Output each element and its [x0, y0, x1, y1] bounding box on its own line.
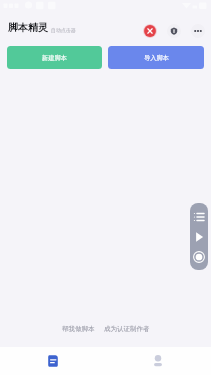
button[interactable]: Play [190, 228, 208, 246]
button[interactable]: Scripts [0, 347, 105, 375]
button[interactable]: 导入脚本 [108, 46, 204, 69]
staticText: 脚本精灵 [8, 21, 48, 34]
button[interactable]: Record [190, 248, 208, 266]
staticText: 自动点击器 [51, 27, 76, 33]
button[interactable]: 帮我做脚本 [59, 323, 98, 335]
button[interactable]: List [190, 208, 208, 226]
staticText: 帮我做脚本 [62, 325, 95, 333]
staticText: 导入脚本 [144, 54, 169, 62]
button[interactable]: 成为认证制作者 [101, 323, 153, 335]
button[interactable]: More options [191, 24, 205, 38]
staticText: 成为认证制作者 [104, 325, 150, 333]
button[interactable]: Security [167, 24, 181, 38]
button[interactable]: Profile [105, 347, 211, 375]
button[interactable]: 新建脚本 [7, 46, 102, 69]
button[interactable]: Close [143, 24, 157, 38]
staticText: 新建脚本 [42, 54, 67, 62]
